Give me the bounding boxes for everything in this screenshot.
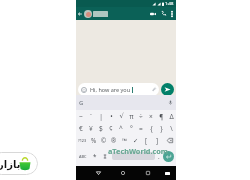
button[interactable]: More options <box>168 7 176 20</box>
staticText: ¶ <box>159 112 164 121</box>
staticText: ~ <box>79 112 83 121</box>
staticText: [ <box>145 136 148 144</box>
button[interactable]: Move cursor <box>100 146 110 166</box>
staticText: € <box>79 124 83 133</box>
button[interactable]: ^ <box>116 122 126 134</box>
button[interactable]: } <box>156 122 166 134</box>
staticText: Δ <box>169 112 174 121</box>
staticText: بازار <box>0 159 21 171</box>
button[interactable]: | <box>96 110 106 122</box>
button[interactable]: Google <box>78 99 85 106</box>
staticText: © <box>101 136 107 144</box>
button[interactable]: Back <box>92 166 105 180</box>
staticText: 1:48 <box>165 1 174 7</box>
staticText: √ <box>119 112 124 120</box>
button[interactable]: [ <box>141 134 152 146</box>
staticText: ^ <box>119 124 123 133</box>
button[interactable]: Hide keyboard <box>161 166 173 180</box>
button[interactable]: { <box>146 122 156 134</box>
button[interactable]: ® <box>109 134 119 146</box>
button[interactable]: Space <box>112 152 155 160</box>
staticText: . <box>158 152 160 160</box>
button[interactable]: ÷ <box>136 110 146 122</box>
button[interactable]: ` <box>86 110 96 122</box>
staticText: × <box>149 112 153 121</box>
button[interactable]: Δ <box>166 110 176 122</box>
button[interactable]: Video call <box>147 7 158 20</box>
button[interactable]: © <box>99 134 109 146</box>
staticText: ] <box>156 136 159 144</box>
button[interactable]: \ <box>166 122 176 134</box>
button[interactable]: Recents <box>141 166 154 180</box>
button[interactable]: ✓ <box>130 134 141 146</box>
staticText: • <box>110 112 113 121</box>
staticText: = <box>139 124 143 133</box>
button[interactable]: Voice input <box>168 100 173 105</box>
button[interactable]: ¥ <box>86 122 96 134</box>
button[interactable]: Send <box>161 83 174 96</box>
button[interactable]: € <box>76 122 86 134</box>
staticText: aTechWorld.com <box>108 146 168 156</box>
staticText: ¢ <box>109 124 113 133</box>
button[interactable]: • <box>106 110 116 122</box>
staticText: ¥ <box>89 124 93 133</box>
staticText: ° <box>130 124 133 133</box>
button[interactable]: √ <box>116 110 126 122</box>
button[interactable]: π <box>126 110 136 122</box>
button[interactable]: Bazaar <box>0 152 38 175</box>
staticText: } <box>160 124 163 133</box>
staticText: Hi, how are you <box>90 86 131 93</box>
button[interactable]: Home <box>116 166 129 180</box>
staticText: % <box>91 136 97 144</box>
button[interactable]: ¢ <box>106 122 116 134</box>
button[interactable]: ] <box>152 134 163 146</box>
button[interactable]: Back <box>76 7 84 20</box>
staticText: G <box>79 99 84 106</box>
button[interactable]: × <box>146 110 156 122</box>
button[interactable]: Backspace <box>163 134 176 146</box>
staticText: ABC <box>79 154 87 159</box>
button[interactable]: Enter <box>163 151 174 162</box>
staticText: ™ <box>122 136 127 144</box>
button[interactable]: ™ <box>119 134 130 146</box>
staticText: * <box>93 152 97 160</box>
button[interactable]: . <box>155 146 163 166</box>
button[interactable] <box>84 7 147 20</box>
staticText: ✓ <box>133 137 139 144</box>
staticText: { <box>150 124 153 133</box>
button[interactable]: = <box>136 122 146 134</box>
button[interactable]: Call <box>158 7 168 20</box>
button[interactable]: ABC <box>76 146 89 166</box>
button[interactable]: Hi, how are you <box>78 83 159 96</box>
staticText: ® <box>111 136 117 144</box>
staticText: | <box>99 112 103 121</box>
button[interactable]: ° <box>126 122 136 134</box>
staticText: $ <box>99 124 103 133</box>
button[interactable]: ¶ <box>156 110 166 122</box>
button[interactable]: $ <box>96 122 106 134</box>
button[interactable]: ?123 <box>76 134 89 146</box>
staticText: ÷ <box>139 112 143 121</box>
staticText: \ <box>170 124 173 133</box>
button[interactable]: ~ <box>76 110 86 122</box>
staticText: ` <box>90 112 92 121</box>
staticText: ?123 <box>78 138 87 143</box>
staticText: π <box>129 112 134 121</box>
button[interactable]: * <box>89 146 100 166</box>
button[interactable]: % <box>89 134 99 146</box>
